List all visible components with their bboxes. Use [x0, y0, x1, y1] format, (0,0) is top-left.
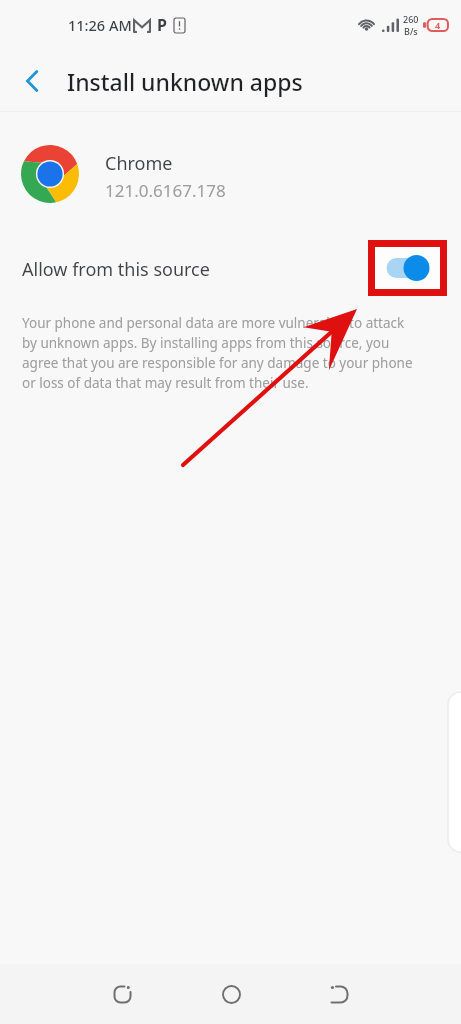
button[interactable]: Allow from this source — [0, 240, 461, 298]
staticText: 11:26 AM — [68, 15, 132, 35]
staticText: Your phone and personal data are more vu… — [22, 314, 413, 392]
staticText: 121.0.6167.178 — [105, 179, 226, 202]
staticText: P — [157, 14, 167, 36]
staticText: 4 — [435, 19, 441, 31]
button[interactable]: Back — [285, 970, 393, 1018]
staticText: B/s — [404, 25, 418, 37]
staticText: Install unknown apps — [67, 66, 303, 97]
staticText: Chrome — [105, 151, 173, 176]
staticText: Allow from this source — [22, 257, 210, 282]
staticText: 260 — [403, 13, 419, 25]
button[interactable]: Allow from this source toggle, on — [368, 240, 447, 296]
button[interactable]: Home — [177, 970, 285, 1018]
button[interactable]: Back — [8, 57, 56, 105]
button[interactable]: Recent apps — [68, 970, 177, 1018]
